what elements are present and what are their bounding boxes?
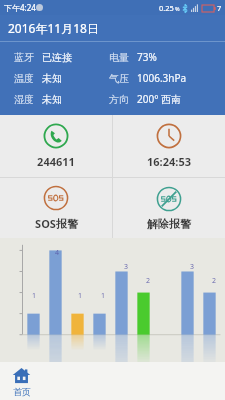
staticText: % bbox=[175, 5, 180, 12]
other: Call bbox=[43, 123, 69, 149]
staticText: 1006.3hPa bbox=[137, 71, 187, 85]
staticText: 0.25 bbox=[159, 3, 174, 13]
other: Home bbox=[12, 366, 31, 385]
button[interactable]: SOS alarm bbox=[0, 178, 112, 238]
staticText: 解除报警 bbox=[147, 217, 191, 231]
staticText: 16:24:53 bbox=[147, 154, 191, 169]
button[interactable]: Time bbox=[113, 115, 225, 177]
staticText: 温度 bbox=[14, 72, 34, 85]
button[interactable]: Cancel alarm bbox=[113, 178, 225, 238]
staticText: 3 bbox=[124, 262, 129, 272]
staticText: 下午4:24 bbox=[4, 2, 36, 13]
staticText: 已连接 bbox=[42, 51, 72, 64]
staticText: 1 bbox=[101, 291, 106, 301]
staticText: 方向 bbox=[109, 93, 129, 106]
staticText: 未知 bbox=[42, 72, 62, 85]
staticText: 2016年11月18日 bbox=[8, 20, 99, 36]
staticText: 73% bbox=[137, 50, 157, 64]
other: Cancel alarm bbox=[156, 186, 182, 212]
staticText: 4 bbox=[55, 248, 60, 258]
staticText: 气压 bbox=[109, 72, 129, 85]
staticText: 1 bbox=[32, 291, 37, 301]
staticText: 首页 bbox=[13, 386, 31, 397]
staticText: SOS报警 bbox=[35, 216, 78, 231]
button[interactable]: Home bbox=[12, 366, 31, 397]
other: SOS alarm bbox=[43, 185, 69, 211]
staticText: 2 bbox=[146, 276, 151, 286]
staticText: 电量 bbox=[109, 51, 129, 64]
staticText: 1 bbox=[78, 291, 83, 301]
staticText: 未知 bbox=[42, 93, 62, 106]
staticText: 2 bbox=[212, 276, 217, 286]
staticText: 蓝牙 bbox=[14, 51, 34, 64]
staticText: 湿度 bbox=[14, 93, 34, 106]
other: Time bbox=[156, 123, 182, 149]
staticText: 7 bbox=[217, 3, 222, 13]
staticText: 244611 bbox=[37, 154, 75, 169]
button[interactable]: Call bbox=[0, 115, 112, 177]
staticText: 3 bbox=[190, 262, 195, 272]
staticText: 200° 西南 bbox=[137, 92, 182, 106]
